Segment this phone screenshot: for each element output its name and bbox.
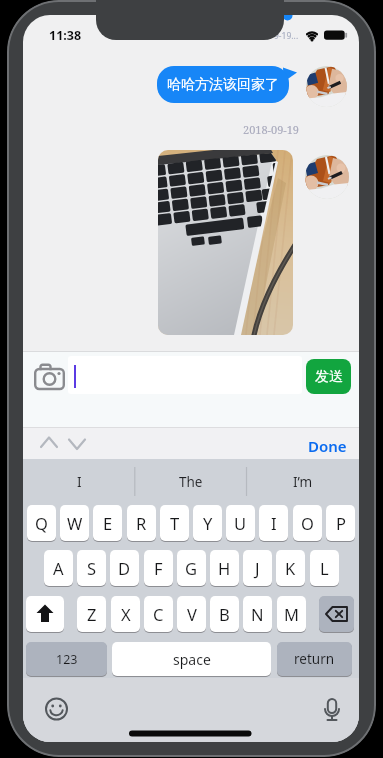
button[interactable]: [34, 364, 65, 390]
staticText: B: [219, 603, 230, 625]
button[interactable]: I: [259, 505, 288, 541]
button[interactable]: Done: [297, 436, 357, 454]
staticText: E: [103, 512, 113, 534]
button[interactable]: C: [144, 596, 173, 632]
button[interactable]: S: [77, 550, 106, 586]
button[interactable]: F: [144, 550, 173, 586]
button[interactable]: T: [160, 505, 189, 541]
button[interactable]: V: [177, 596, 206, 632]
staticText: L: [320, 557, 329, 579]
staticText: 11:38: [49, 27, 82, 43]
staticText: 9-19...: [274, 30, 299, 42]
staticText: D: [118, 557, 131, 579]
staticText: H: [218, 557, 231, 579]
staticText: Done: [308, 436, 347, 454]
staticText: 哈哈方法该回家了: [167, 76, 279, 94]
button[interactable]: K: [276, 550, 305, 586]
button[interactable]: D: [110, 550, 139, 586]
button[interactable]: U: [226, 505, 255, 541]
staticText: W: [67, 512, 83, 534]
button[interactable]: E: [93, 505, 122, 541]
button[interactable]: B: [210, 596, 239, 632]
staticText: Z: [87, 603, 97, 625]
staticText: O: [301, 512, 314, 534]
button[interactable]: N: [243, 596, 272, 632]
staticText: F: [154, 557, 163, 579]
staticText: A: [53, 557, 64, 579]
button[interactable]: [305, 155, 349, 199]
button[interactable]: J: [243, 550, 272, 586]
button[interactable]: G: [177, 550, 206, 586]
button[interactable]: X: [111, 596, 140, 632]
button[interactable]: [318, 695, 346, 723]
button[interactable]: W: [60, 505, 89, 541]
button[interactable]: Y: [193, 505, 222, 541]
button[interactable]: L: [310, 550, 339, 586]
button[interactable]: space: [112, 642, 271, 676]
button[interactable]: return: [277, 642, 352, 676]
button[interactable]: [319, 596, 354, 632]
button[interactable]: 哈哈方法该回家了: [157, 66, 289, 103]
staticText: space: [173, 650, 211, 669]
staticText: C: [153, 603, 164, 625]
button[interactable]: [26, 596, 64, 632]
button[interactable]: I: [23, 459, 135, 504]
staticText: P: [336, 512, 346, 534]
staticText: N: [251, 603, 264, 625]
button[interactable]: Z: [77, 596, 106, 632]
staticText: Q: [35, 512, 48, 534]
staticText: 2018-09-19: [243, 122, 300, 137]
staticText: K: [285, 557, 296, 579]
button[interactable]: [68, 356, 302, 394]
staticText: T: [170, 512, 180, 534]
staticText: Y: [203, 512, 213, 534]
button[interactable]: P: [326, 505, 355, 541]
button[interactable]: R: [127, 505, 156, 541]
staticText: return: [294, 650, 335, 668]
staticText: U: [234, 512, 247, 534]
button[interactable]: The: [135, 459, 247, 504]
button[interactable]: [306, 66, 347, 107]
staticText: M: [284, 603, 299, 625]
button[interactable]: Q: [27, 505, 56, 541]
staticText: X: [121, 603, 131, 625]
staticText: 发送: [315, 368, 343, 386]
staticText: G: [185, 557, 198, 579]
button[interactable]: O: [293, 505, 322, 541]
staticText: I’m: [293, 473, 313, 491]
staticText: R: [136, 512, 147, 534]
button[interactable]: 发送: [306, 359, 351, 394]
staticText: 123: [56, 651, 78, 668]
button[interactable]: [43, 695, 71, 723]
button[interactable]: I’m: [247, 459, 359, 504]
staticText: The: [179, 473, 203, 491]
button[interactable]: M: [277, 596, 306, 632]
staticText: S: [87, 557, 97, 579]
staticText: V: [187, 603, 197, 625]
button[interactable]: A: [44, 550, 73, 586]
button[interactable]: H: [210, 550, 239, 586]
button[interactable]: [158, 150, 293, 335]
staticText: I: [77, 473, 82, 491]
staticText: I: [271, 512, 277, 534]
staticText: J: [255, 557, 260, 579]
button[interactable]: 123: [26, 642, 107, 676]
